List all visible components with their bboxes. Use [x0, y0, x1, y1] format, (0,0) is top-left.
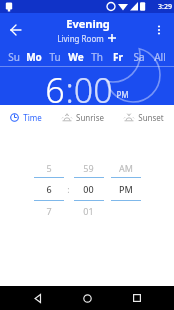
button[interactable]: Fr [107, 47, 128, 66]
staticText: All [154, 50, 166, 64]
button[interactable]: Th [86, 47, 107, 66]
staticText: Fr [113, 50, 123, 64]
button[interactable]: Su [4, 47, 24, 66]
staticText: Th [91, 50, 103, 64]
button[interactable]: All [149, 47, 170, 66]
button[interactable]: More options [144, 15, 174, 45]
staticText: 59 [83, 162, 94, 174]
staticText: Living Room [57, 33, 104, 44]
button[interactable]: AM [107, 158, 144, 220]
button[interactable]: Back [26, 286, 50, 310]
button[interactable]: Back [0, 14, 32, 46]
button[interactable]: Home [75, 286, 99, 310]
staticText: AM [119, 162, 133, 174]
staticText: 3:29 [158, 2, 172, 12]
staticText: 5 [46, 162, 52, 174]
button[interactable]: Sunset [113, 105, 174, 130]
staticText: : [67, 183, 70, 195]
staticText: 7 [46, 205, 52, 217]
button[interactable]: Sunrise [52, 105, 113, 130]
button[interactable]: Add room [106, 32, 118, 44]
staticText: 01 [83, 205, 94, 217]
staticText: Mo [26, 50, 42, 64]
button[interactable]: 59 [70, 158, 107, 220]
staticText: 00 [83, 183, 94, 195]
button[interactable]: Recent apps [125, 286, 149, 310]
staticText: Time [23, 112, 42, 123]
staticText: 6 [45, 67, 65, 105]
staticText: :00 [65, 67, 113, 105]
button[interactable]: 5 [30, 158, 67, 220]
staticText: Sa [133, 50, 145, 64]
staticText: Sunrise [76, 112, 104, 123]
staticText: 6 [46, 183, 52, 195]
staticText: PM [119, 183, 133, 195]
button[interactable]: Tu [44, 47, 65, 66]
staticText: Su [8, 50, 20, 64]
button[interactable]: Mo [24, 47, 44, 66]
staticText: PM [116, 89, 129, 100]
staticText: We [68, 50, 84, 64]
button[interactable]: Time [0, 105, 52, 130]
staticText: Evening [66, 16, 110, 31]
staticText: Sunset [138, 112, 164, 123]
staticText: Tu [49, 50, 61, 64]
button[interactable]: We [65, 47, 86, 66]
button[interactable]: Sa [128, 47, 149, 66]
